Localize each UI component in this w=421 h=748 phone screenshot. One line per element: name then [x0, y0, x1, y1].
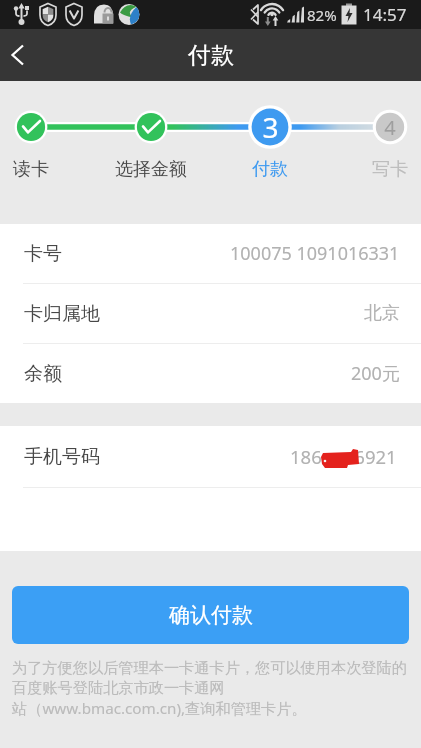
staticText: 手机号码	[24, 445, 100, 469]
staticText: 读卡	[13, 158, 49, 181]
button[interactable]: 卡归属地	[0, 284, 421, 343]
staticText: 186 6921	[290, 444, 397, 469]
staticText: 确认付款	[169, 602, 253, 628]
staticText: 选择金额	[115, 158, 187, 181]
staticText: 余额	[24, 362, 62, 386]
button[interactable]: 余额	[0, 344, 421, 403]
staticText: 付款	[188, 41, 234, 70]
staticText: 200元	[351, 361, 400, 386]
staticText: 3	[262, 108, 279, 146]
staticText: 写卡	[372, 158, 408, 181]
button[interactable]: 3	[0, 81, 421, 224]
staticText: 卡归属地	[24, 302, 100, 326]
button[interactable]: 手机号码	[0, 426, 421, 487]
staticText: 卡号	[24, 242, 62, 266]
button[interactable]: 确认付款	[12, 586, 409, 644]
staticText: 100075 1091016331	[230, 241, 400, 266]
staticText: 4	[384, 114, 396, 141]
staticText: 14:57	[363, 3, 407, 26]
staticText: 付款	[252, 158, 288, 181]
staticText: 北京	[364, 302, 400, 325]
staticText: 为了方便您以后管理本一卡通卡片，您可以使用本次登陆的 百度账号登陆北京市政一卡通…	[12, 658, 407, 718]
staticText: 82%	[307, 5, 337, 25]
button[interactable]: Back	[0, 29, 44, 81]
button[interactable]: 卡号	[0, 224, 421, 283]
